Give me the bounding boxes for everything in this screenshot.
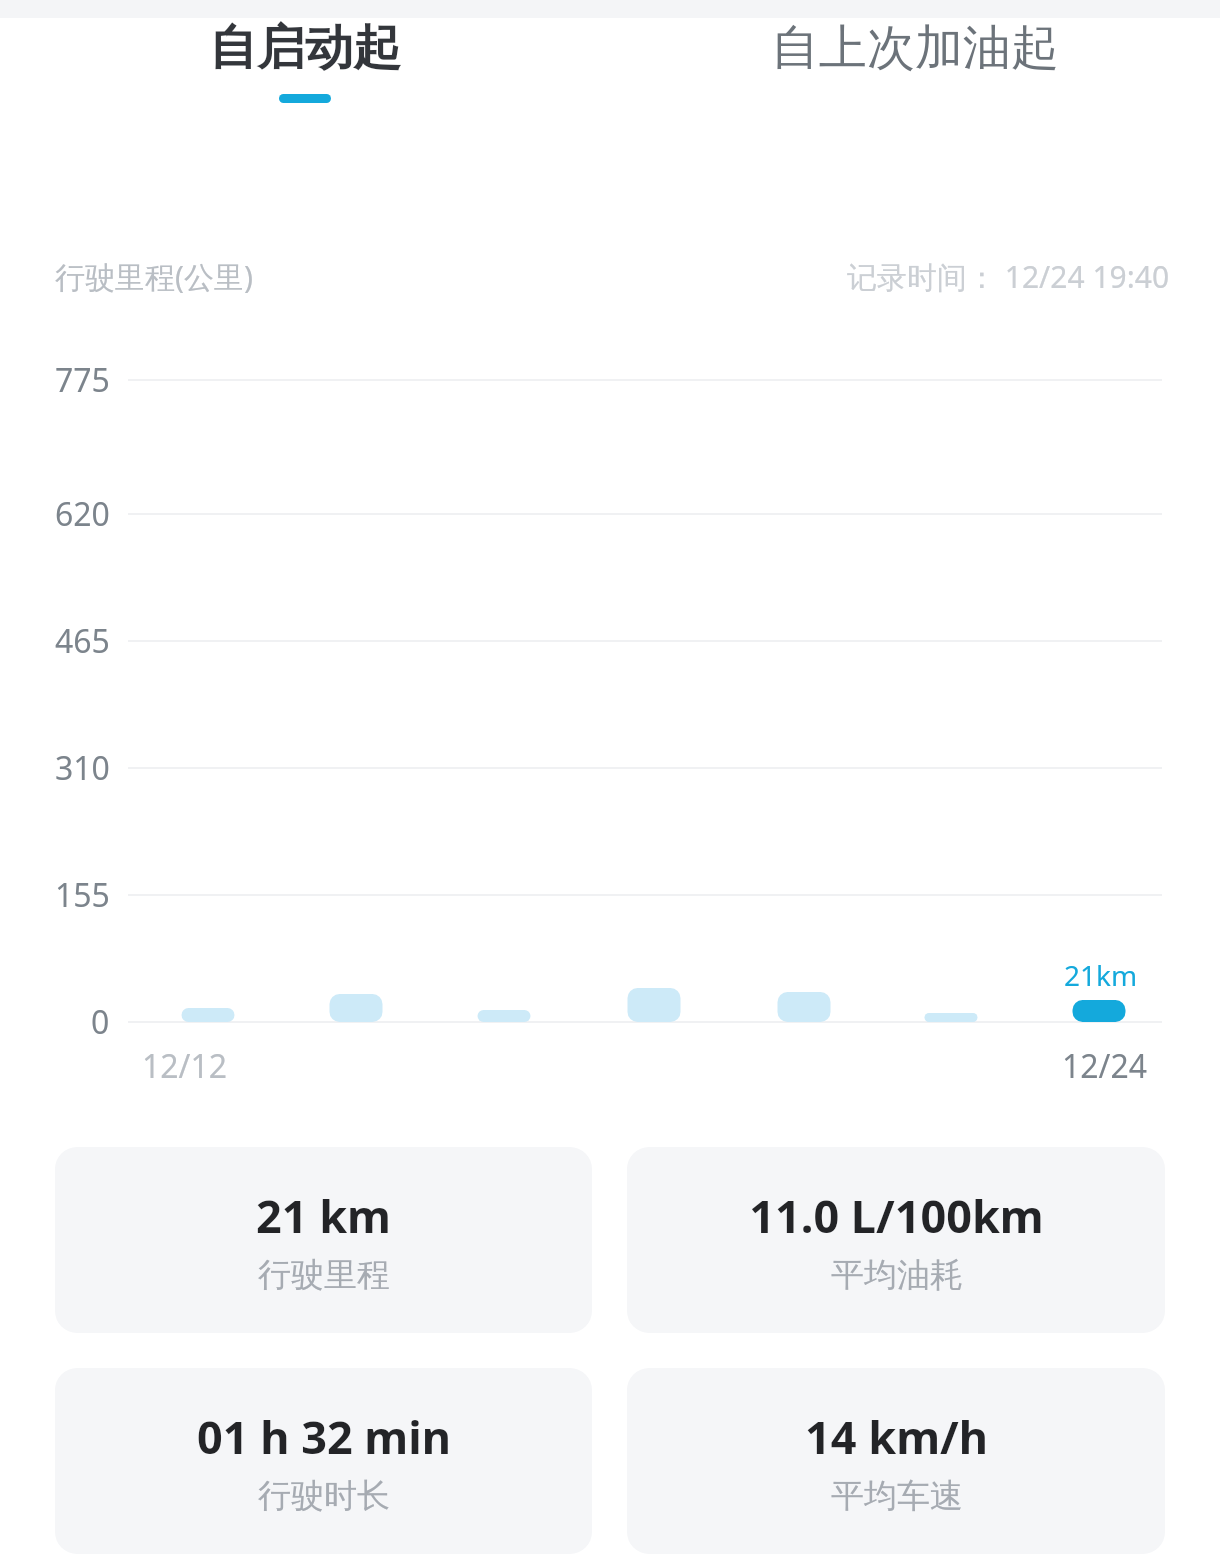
staticText: 620 [55, 492, 110, 536]
button[interactable]: 21 km [55, 1147, 592, 1333]
staticText: 01 h 32 min [197, 1406, 451, 1467]
staticText: 行驶时长 [258, 1475, 390, 1517]
staticText: 11.0 L/100km [749, 1185, 1044, 1246]
staticText: 775 [55, 358, 110, 402]
button[interactable]: 自启动起 [0, 18, 610, 103]
staticText: 平均油耗 [831, 1254, 963, 1296]
staticText: 行驶里程 [258, 1254, 390, 1296]
button[interactable]: 自上次加油起 [610, 18, 1220, 103]
button[interactable]: 11.0 L/100km [627, 1147, 1165, 1333]
staticText: 平均车速 [831, 1475, 963, 1517]
staticText: 155 [55, 873, 110, 917]
button[interactable]: 01 h 32 min [55, 1368, 592, 1554]
staticText: 21km [1064, 956, 1138, 994]
staticText: 310 [55, 746, 110, 790]
button[interactable]: 14 km/h [627, 1368, 1165, 1554]
staticText: 行驶里程(公里) [55, 256, 253, 297]
staticText: 自上次加油起 [771, 18, 1059, 78]
staticText: 0 [91, 1000, 110, 1044]
staticText: 12/24 [1062, 1044, 1148, 1088]
staticText: 21 km [256, 1185, 391, 1246]
staticText: 14 km/h [805, 1406, 988, 1467]
staticText: 记录时间： 12/24 19:40 [847, 256, 1170, 297]
staticText: 12/12 [142, 1044, 228, 1088]
staticText: 自启动起 [209, 18, 401, 78]
staticText: 465 [55, 619, 110, 663]
